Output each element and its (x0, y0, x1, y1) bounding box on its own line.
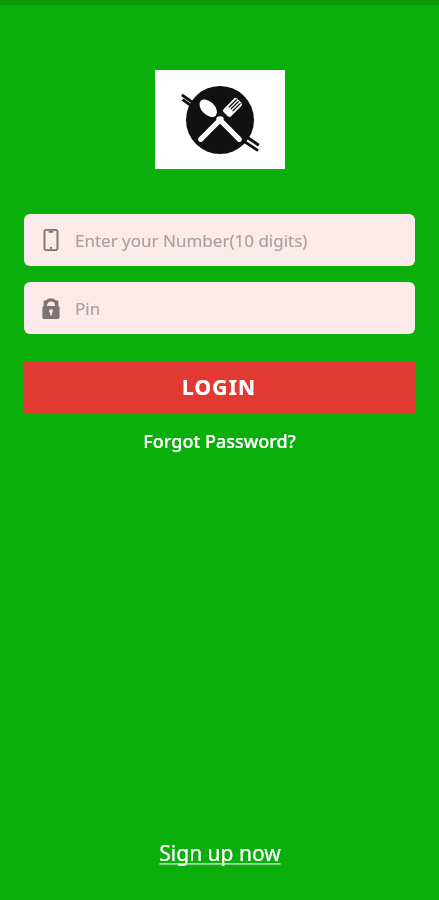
staticText: LOGIN (182, 373, 257, 402)
staticText: Sign up now (159, 839, 281, 868)
staticText: Enter your Number(10 digits) (75, 229, 308, 252)
button[interactable]: Sign up now (149, 835, 291, 872)
other: Phone number (38, 227, 64, 253)
button[interactable]: Forgot Password? (133, 425, 306, 458)
button[interactable]: LOGIN (24, 361, 415, 413)
button[interactable]: Phone number (24, 214, 415, 266)
other: App logo (178, 78, 262, 162)
staticText: Forgot Password? (143, 429, 296, 454)
button[interactable]: Pin (24, 282, 415, 334)
other: Pin (38, 295, 64, 321)
staticText: Pin (75, 297, 101, 320)
